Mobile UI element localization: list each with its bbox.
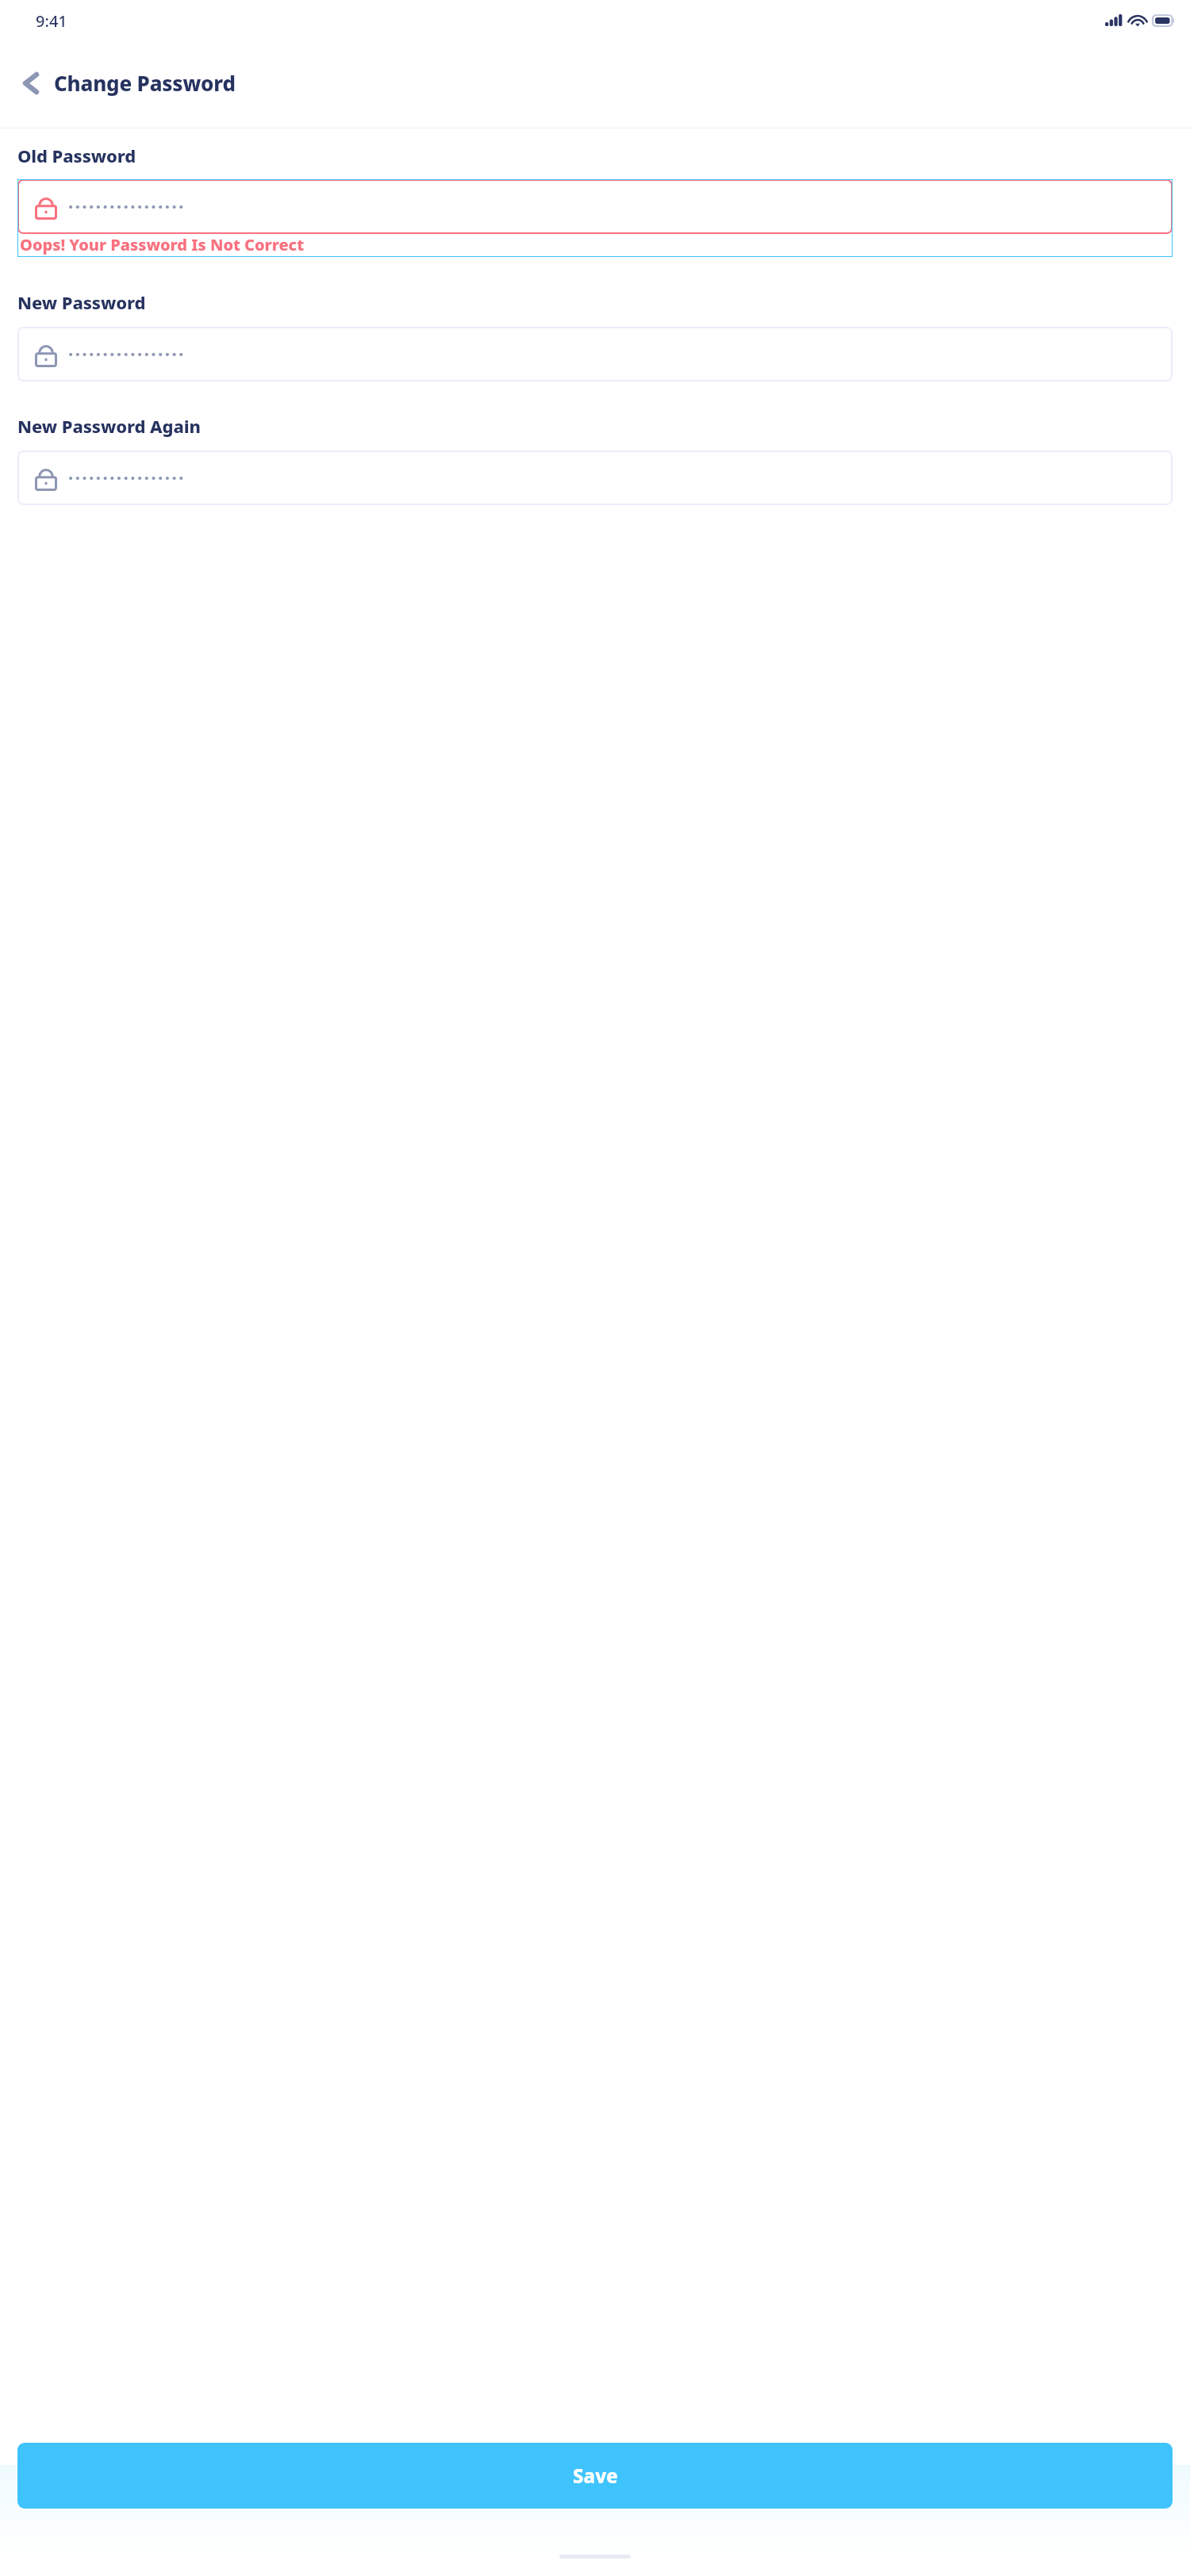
staticText: New Password Again [17,414,201,438]
button[interactable]: Back [14,67,48,100]
button[interactable] [17,179,1173,234]
button[interactable]: Save [17,2443,1173,2509]
staticText: Change Password [54,69,236,97]
staticText: Save [573,2463,618,2489]
button[interactable] [17,450,1173,505]
staticText: Old Password [17,144,136,167]
staticText: Oops! Your Password Is Not Correct [20,234,305,255]
button[interactable] [17,327,1173,381]
staticText: 9:41 [36,10,67,32]
staticText: New Password [17,290,146,314]
